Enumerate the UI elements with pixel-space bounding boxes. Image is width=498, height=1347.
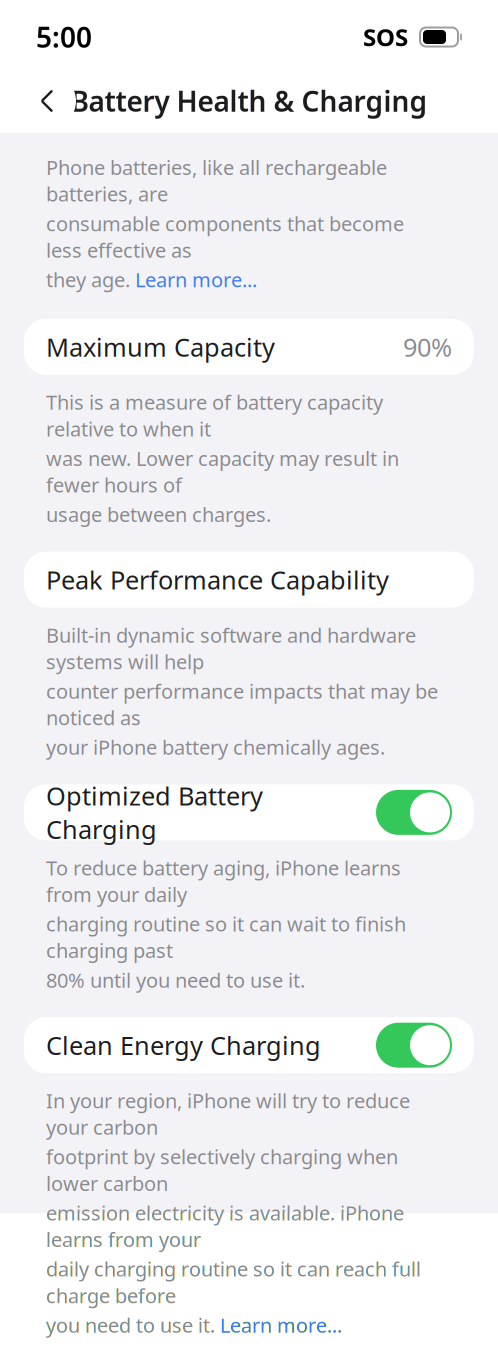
staticText: In your region, iPhone will try to reduc… (46, 1087, 410, 1140)
staticText: usage between charges. (46, 501, 271, 528)
staticText: Built-in dynamic software and hardware s… (46, 622, 416, 675)
staticText: Maximum Capacity (46, 330, 275, 364)
staticText: Learn more... (135, 266, 257, 293)
button[interactable]: Back (20, 73, 76, 129)
staticText: Optimized Battery Charging (46, 779, 263, 846)
button[interactable]: Learn more... (220, 1312, 342, 1338)
staticText: To reduce battery aging, iPhone learns f… (46, 854, 401, 907)
button[interactable]: Peak Performance Capability (24, 552, 474, 608)
staticText: emission electricity is available. iPhon… (46, 1199, 404, 1252)
staticText: counter performance impacts that may be … (46, 678, 438, 731)
button[interactable]: Maximum Capacity (24, 319, 474, 375)
staticText: Phone batteries, like all rechargeable b… (46, 154, 387, 207)
staticText: This is a measure of battery capacity re… (46, 389, 383, 442)
staticText: Clean Energy Charging (46, 1028, 321, 1062)
staticText: Battery Health & Charging (70, 82, 427, 120)
button[interactable]: Clean Energy Charging (24, 1017, 474, 1073)
staticText: your iPhone battery chemically ages. (46, 734, 385, 760)
staticText: 90% (403, 330, 452, 364)
button[interactable]: Optimized Battery Charging (24, 784, 474, 840)
staticText: Learn more... (220, 1312, 342, 1338)
staticText: daily charging routine so it can reach f… (46, 1255, 421, 1309)
staticText: was new. Lower capacity may result in fe… (46, 445, 399, 498)
staticText: Peak Performance Capability (46, 563, 389, 596)
staticText: you need to use it. (46, 1312, 220, 1338)
staticText: consumable components that become less e… (46, 210, 404, 263)
staticText: charging routine so it can wait to finis… (46, 910, 406, 964)
staticText: footprint by selectively charging when l… (46, 1143, 398, 1196)
staticText: they age. (46, 266, 135, 293)
staticText: 80% until you need to use it. (46, 967, 305, 993)
button[interactable]: Learn more... (135, 266, 257, 293)
